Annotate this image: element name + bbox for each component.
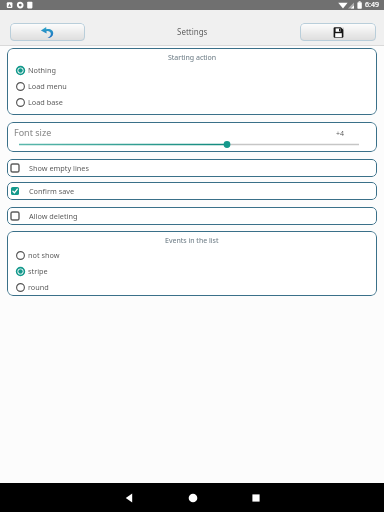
button[interactable]: Load base bbox=[7, 94, 377, 110]
staticText: Load base bbox=[28, 97, 63, 107]
staticText: not show bbox=[28, 250, 60, 260]
button[interactable]: Show empty lines bbox=[7, 159, 377, 177]
button[interactable]: Nothing bbox=[7, 62, 377, 78]
staticText: Nothing bbox=[28, 65, 56, 75]
staticText: Events in the list bbox=[165, 236, 219, 246]
staticText: 6:49 bbox=[365, 0, 379, 10]
button[interactable]: not show bbox=[7, 247, 377, 263]
staticText: Confirm save bbox=[29, 186, 75, 196]
staticText: stripe bbox=[28, 266, 48, 276]
staticText: Settings bbox=[177, 26, 208, 37]
button[interactable]: stripe bbox=[7, 263, 377, 279]
button[interactable]: Font size bbox=[7, 122, 377, 152]
staticText: +4 bbox=[336, 129, 345, 139]
button[interactable] bbox=[224, 483, 287, 512]
staticText: Starting action bbox=[168, 53, 217, 63]
button[interactable]: Load menu bbox=[7, 78, 377, 94]
button[interactable] bbox=[98, 483, 161, 512]
button[interactable] bbox=[10, 23, 85, 41]
button[interactable] bbox=[300, 23, 376, 41]
staticText: round bbox=[28, 282, 49, 292]
staticText: Allow deleting bbox=[29, 211, 78, 221]
staticText: Show empty lines bbox=[29, 163, 89, 173]
button[interactable] bbox=[161, 483, 224, 512]
button[interactable]: round bbox=[7, 279, 377, 295]
staticText: Load menu bbox=[28, 81, 67, 91]
button[interactable]: Confirm save bbox=[7, 182, 377, 200]
staticText: Font size bbox=[14, 126, 52, 138]
button[interactable]: Allow deleting bbox=[7, 207, 377, 225]
